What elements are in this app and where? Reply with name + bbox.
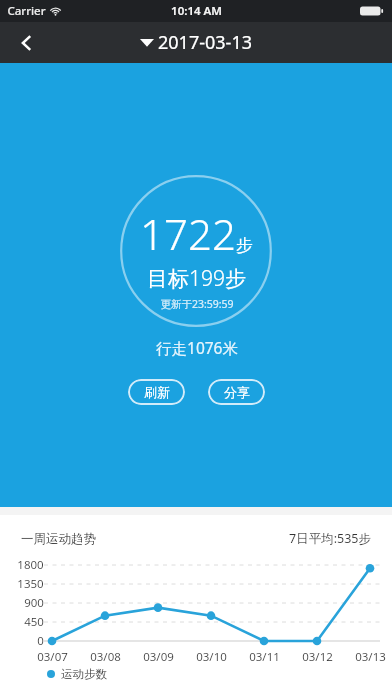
staticText: 03/12: [302, 649, 333, 665]
staticText: 更新于23:59:59: [160, 297, 234, 311]
staticText: 1350: [17, 576, 44, 592]
staticText: 03/07: [37, 649, 68, 665]
staticText: 03/10: [196, 649, 227, 665]
staticText: 2017-03-13: [158, 30, 252, 55]
staticText: 7日平均:535步: [289, 530, 371, 547]
button[interactable]: 2017-03-13: [134, 24, 258, 61]
staticText: 900: [24, 595, 44, 611]
button[interactable]: 分享: [208, 379, 265, 405]
staticText: 03/11: [249, 649, 280, 665]
staticText: 10:14 AM: [171, 3, 222, 19]
staticText: 1800: [17, 557, 44, 573]
staticText: 行走1076米: [156, 337, 238, 358]
button[interactable]: 刷新: [128, 379, 185, 405]
staticText: 1722: [140, 205, 236, 262]
staticText: 03/13: [355, 649, 386, 665]
staticText: 目标199步: [147, 264, 246, 293]
staticText: 0: [37, 633, 44, 649]
staticText: 450: [24, 614, 44, 630]
button[interactable]: Back: [6, 22, 48, 63]
staticText: 步: [236, 235, 253, 256]
staticText: 运动步数: [61, 667, 107, 681]
staticText: 刷新: [144, 384, 170, 400]
staticText: Carrier: [7, 3, 46, 19]
staticText: 一周运动趋势: [21, 531, 96, 547]
staticText: 03/08: [90, 649, 121, 665]
staticText: 03/09: [143, 649, 174, 665]
staticText: 分享: [224, 384, 250, 400]
